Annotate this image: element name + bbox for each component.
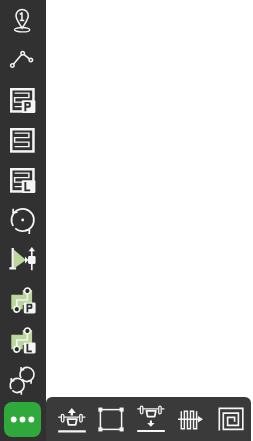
button[interactable]: Land (131, 397, 171, 441)
button[interactable]: Survey portrait (7, 84, 39, 116)
button[interactable]: Polyline path (7, 44, 39, 76)
button[interactable]: Select area (91, 397, 131, 441)
button[interactable]: Orbit (7, 204, 39, 236)
button[interactable]: Structure scan (7, 244, 39, 276)
button[interactable]: Spiral pattern (211, 397, 251, 441)
button[interactable]: Corridor landscape (7, 324, 39, 356)
button[interactable]: More tools (4, 402, 41, 437)
button[interactable]: Waypoint (7, 4, 39, 36)
button[interactable]: Survey landscape (7, 164, 39, 196)
button[interactable]: Double orbit (7, 364, 39, 396)
button[interactable]: Survey pattern (171, 397, 211, 441)
button[interactable]: Takeoff (52, 397, 91, 441)
button[interactable]: Corridor portrait (7, 284, 39, 316)
button[interactable]: Survey (7, 124, 39, 156)
